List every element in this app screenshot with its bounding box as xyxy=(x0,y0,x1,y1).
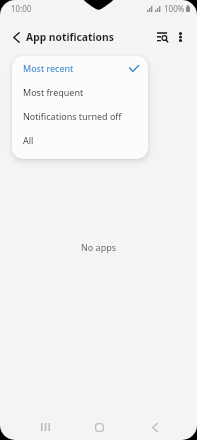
staticText: No apps xyxy=(0,241,197,253)
button[interactable]: Back xyxy=(140,414,170,440)
staticText: All xyxy=(23,134,34,146)
button[interactable]: Notifications turned off xyxy=(12,104,148,128)
staticText: Notifications turned off xyxy=(23,110,122,122)
button[interactable]: Navigate up xyxy=(2,22,30,52)
staticText: App notifications xyxy=(26,30,114,44)
button[interactable]: Home xyxy=(84,414,114,440)
button[interactable]: More options xyxy=(168,22,193,52)
button[interactable]: All xyxy=(12,128,148,152)
button[interactable]: Most frequent xyxy=(12,80,148,104)
button[interactable]: Recents xyxy=(30,414,60,440)
button[interactable]: Search xyxy=(149,22,176,52)
button[interactable]: Most recent xyxy=(12,56,148,80)
staticText: 100% xyxy=(164,3,185,14)
staticText: 10:00 xyxy=(11,3,32,14)
staticText: Most frequent xyxy=(23,86,84,98)
staticText: Most recent xyxy=(23,62,74,74)
